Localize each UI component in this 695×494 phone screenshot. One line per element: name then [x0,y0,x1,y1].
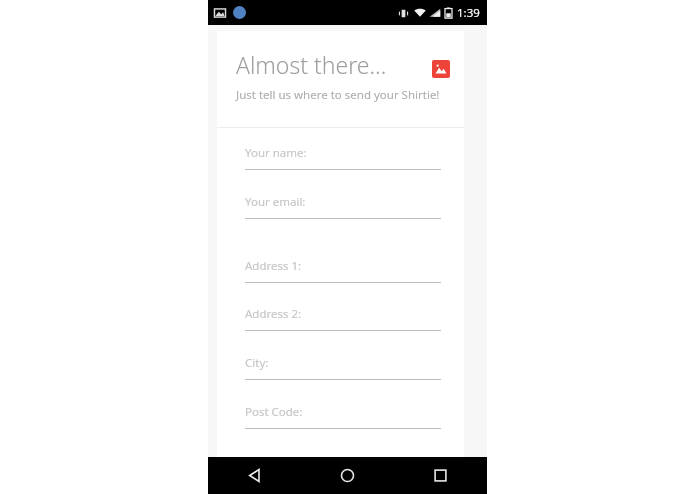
button[interactable]: Your email: [245,194,441,219]
staticText: Address 1: [245,258,302,274]
staticText: Post Code: [245,404,303,420]
button[interactable]: Back [208,457,301,494]
button[interactable]: Post Code: [245,404,441,429]
button[interactable]: Address 2: [245,306,441,331]
staticText: Your name: [245,145,307,161]
staticText: 1:39 [457,5,480,21]
staticText: Almost there... [236,49,387,80]
staticText: Just tell us where to send your Shirtie! [236,87,440,103]
staticText: Address 2: [245,306,302,322]
staticText: City: [245,355,269,371]
staticText: Your email: [245,194,306,210]
button[interactable]: Image [432,60,450,78]
button[interactable]: Address 1: [245,258,441,283]
button[interactable]: Recent apps [394,457,487,494]
button[interactable]: Home [301,457,394,494]
button[interactable]: Your name: [245,145,441,170]
button[interactable]: City: [245,355,441,380]
